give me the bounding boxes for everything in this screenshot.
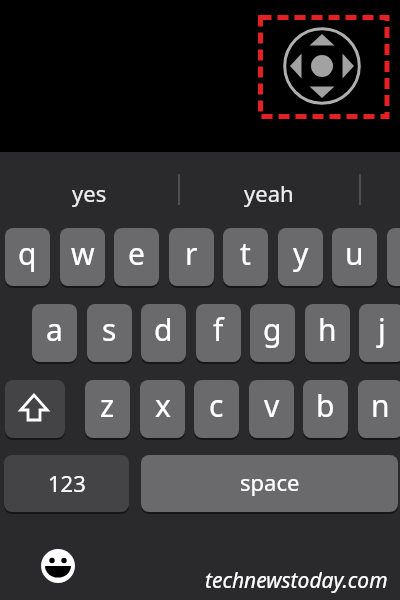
button[interactable]: n <box>358 380 400 438</box>
button[interactable]: z <box>85 380 130 438</box>
button[interactable]: j <box>359 304 400 362</box>
button[interactable]: v <box>249 380 294 438</box>
staticText: a <box>46 309 63 350</box>
staticText: s <box>102 309 117 350</box>
staticText: w <box>71 233 95 274</box>
button[interactable]: i <box>387 228 400 286</box>
staticText: d <box>154 309 173 350</box>
staticText: r <box>185 233 198 274</box>
staticText: y <box>293 233 309 274</box>
button[interactable]: b <box>303 380 348 438</box>
staticText: yeah <box>244 178 294 208</box>
button[interactable]: space <box>141 455 398 512</box>
button[interactable]: e <box>114 228 159 286</box>
button[interactable]: t <box>223 228 268 286</box>
button[interactable]: q <box>5 228 50 286</box>
staticText: n <box>371 385 390 426</box>
staticText: space <box>240 467 300 497</box>
button[interactable] <box>5 380 65 438</box>
button[interactable]: w <box>60 228 105 286</box>
staticText: v <box>264 385 280 426</box>
button[interactable] <box>30 538 86 594</box>
button[interactable]: f <box>196 304 241 362</box>
button[interactable]: yeah <box>180 170 358 216</box>
button[interactable]: c <box>194 380 239 438</box>
button[interactable]: yes <box>0 170 178 216</box>
button[interactable]: u <box>332 228 377 286</box>
button[interactable]: a <box>32 304 77 362</box>
staticText: b <box>316 385 335 426</box>
staticText: yes <box>72 178 107 208</box>
button[interactable]: x <box>140 380 185 438</box>
button[interactable]: s <box>87 304 132 362</box>
staticText: j <box>378 309 386 350</box>
button[interactable]: y <box>278 228 323 286</box>
staticText: g <box>263 309 282 350</box>
button[interactable]: 123 <box>4 455 129 512</box>
staticText: u <box>345 233 364 274</box>
staticText: 123 <box>48 468 86 498</box>
button[interactable]: g <box>250 304 295 362</box>
staticText: t <box>240 233 251 274</box>
button[interactable]: d <box>141 304 186 362</box>
staticText: e <box>128 233 145 274</box>
button[interactable]: r <box>169 228 214 286</box>
staticText: q <box>18 233 37 274</box>
staticText: h <box>318 309 337 350</box>
staticText: z <box>100 385 115 426</box>
button[interactable]: h <box>305 304 350 362</box>
staticText: c <box>209 385 224 426</box>
staticText: x <box>155 385 171 426</box>
staticText: technewstoday.com <box>205 566 388 595</box>
staticText: f <box>213 309 224 350</box>
